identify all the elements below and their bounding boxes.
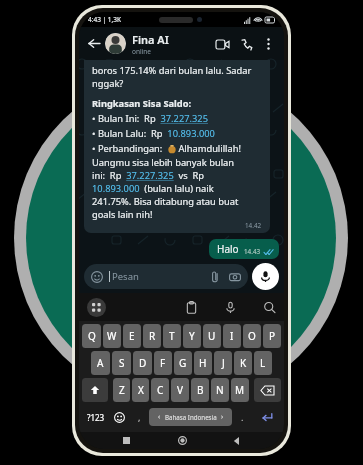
other: Emoji bbox=[91, 271, 103, 283]
button[interactable]: M bbox=[231, 378, 249, 402]
button[interactable]: J bbox=[214, 351, 232, 375]
button[interactable]: H bbox=[194, 351, 212, 375]
button[interactable]: W bbox=[103, 324, 121, 348]
staticText: 14.42 bbox=[245, 221, 262, 230]
staticText: ‹ bbox=[158, 412, 161, 422]
button[interactable]: S bbox=[112, 351, 131, 375]
button[interactable]: , bbox=[129, 405, 149, 429]
button[interactable]: I bbox=[223, 324, 241, 348]
staticText: B bbox=[197, 383, 204, 397]
staticText: Fina AI bbox=[132, 32, 169, 47]
button[interactable]: Clipboard bbox=[185, 301, 198, 314]
staticText: Q bbox=[88, 329, 96, 343]
staticText: Ringkasan Sisa Saldo: bbox=[92, 97, 192, 110]
staticText: A bbox=[97, 356, 104, 370]
staticText: 241.75%. Bisa ditabung atau buat bbox=[92, 195, 239, 208]
staticText: V bbox=[177, 383, 183, 397]
button[interactable]: F bbox=[154, 351, 172, 375]
button[interactable]: Q bbox=[82, 324, 101, 348]
button[interactable]: Keyboard options bbox=[87, 298, 106, 317]
staticText: ini: Rp 37.227.325 vs Rp bbox=[92, 169, 205, 182]
staticText: boros 175.14% dari bulan lalu. Sadar bbox=[92, 64, 252, 77]
other: Attach bbox=[209, 271, 221, 283]
staticText: I bbox=[230, 329, 234, 343]
button[interactable]: Back bbox=[86, 35, 103, 52]
staticText: D bbox=[139, 356, 147, 370]
button[interactable]: C bbox=[151, 378, 169, 402]
other: Camera bbox=[229, 271, 241, 283]
button[interactable]: N bbox=[211, 378, 229, 402]
button[interactable]: Video call bbox=[212, 34, 232, 54]
button[interactable]: V bbox=[171, 378, 189, 402]
staticText: O bbox=[248, 329, 256, 343]
button[interactable]: X bbox=[132, 378, 149, 402]
button[interactable]: Z bbox=[113, 378, 130, 402]
staticText: Halo bbox=[217, 242, 239, 256]
button[interactable] bbox=[105, 33, 126, 54]
staticText: Pesan bbox=[112, 270, 209, 283]
button[interactable]: Back bbox=[228, 432, 246, 449]
button[interactable]: Emoji keyboard bbox=[110, 405, 129, 429]
staticText: 10.893.000 (bulan lalu) naik bbox=[92, 182, 214, 195]
staticText: M bbox=[235, 383, 245, 397]
button[interactable]: Voice call bbox=[236, 34, 256, 54]
button[interactable]: Voice input bbox=[224, 301, 237, 314]
staticText: T bbox=[169, 329, 175, 343]
button[interactable]: Y bbox=[183, 324, 201, 348]
button[interactable]: K bbox=[234, 351, 252, 375]
button[interactable]: More options bbox=[259, 35, 277, 53]
staticText: F bbox=[160, 356, 166, 370]
staticText: E bbox=[129, 329, 135, 343]
staticText: S bbox=[119, 356, 125, 370]
staticText: Y bbox=[189, 329, 195, 343]
staticText: 14.43 bbox=[244, 247, 261, 256]
staticText: H bbox=[199, 356, 207, 370]
button[interactable]: Voice message bbox=[252, 263, 279, 290]
staticText: , bbox=[138, 411, 141, 423]
button[interactable]: D bbox=[133, 351, 152, 375]
button[interactable]: . bbox=[232, 405, 252, 429]
button[interactable]: T bbox=[163, 324, 181, 348]
button[interactable]: P bbox=[263, 324, 281, 348]
button[interactable]: Halo bbox=[209, 239, 279, 259]
button[interactable]: G bbox=[174, 351, 192, 375]
button[interactable]: Key bbox=[254, 378, 281, 402]
staticText: online bbox=[132, 47, 151, 56]
staticText: Bahasa Indonesia bbox=[165, 413, 217, 421]
staticText: L bbox=[260, 356, 266, 370]
button[interactable]: A bbox=[91, 351, 110, 375]
staticText: . bbox=[241, 411, 244, 423]
button[interactable]: Recents bbox=[117, 432, 135, 449]
button[interactable]: ‹ bbox=[149, 408, 232, 426]
staticText: Alhamdulillah! bbox=[176, 142, 241, 155]
staticText: X bbox=[138, 383, 144, 397]
staticText: 4:43 | 1,3K bbox=[88, 15, 122, 24]
button[interactable]: Search bbox=[263, 301, 276, 314]
button[interactable]: boros 175.14% dari bulan lalu. Sadar bbox=[84, 60, 270, 233]
staticText: nggak? bbox=[92, 77, 124, 90]
staticText: P bbox=[269, 329, 276, 343]
button[interactable]: O bbox=[243, 324, 261, 348]
button[interactable]: L bbox=[254, 351, 272, 375]
button[interactable]: ?123 bbox=[81, 405, 110, 429]
staticText: goals lain nih! bbox=[92, 208, 153, 221]
staticText: K bbox=[240, 356, 247, 370]
staticText: • Perbandingan: bbox=[92, 142, 168, 155]
button[interactable]: Emoji bbox=[84, 264, 248, 289]
button[interactable]: R bbox=[143, 324, 161, 348]
staticText: Z bbox=[119, 383, 125, 397]
button[interactable]: Home bbox=[173, 432, 191, 449]
staticText: U bbox=[208, 329, 216, 343]
staticText: W bbox=[107, 329, 117, 343]
staticText: • Bulan Lalu: Rp 10.893.000 bbox=[92, 127, 215, 140]
button[interactable]: Key bbox=[82, 378, 108, 402]
staticText: C bbox=[157, 383, 164, 397]
button[interactable]: B bbox=[191, 378, 209, 402]
button[interactable]: Enter bbox=[252, 405, 282, 429]
button[interactable]: E bbox=[123, 324, 141, 348]
staticText: J bbox=[222, 356, 225, 370]
button[interactable]: U bbox=[203, 324, 221, 348]
staticText: ?123 bbox=[87, 412, 105, 423]
staticText: › bbox=[221, 412, 224, 422]
staticText: • Bulan Ini: Rp 37.227.325 bbox=[92, 112, 208, 125]
